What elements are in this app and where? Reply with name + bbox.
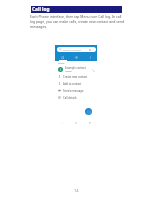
staticText: Create new contact	[63, 75, 88, 79]
button[interactable]: Home	[69, 119, 83, 126]
staticText: Search contacts	[63, 48, 82, 51]
button[interactable]: Create new contact	[55, 73, 97, 80]
staticText: Call details	[63, 96, 77, 100]
button[interactable]: Call	[91, 68, 95, 72]
button[interactable]: Recents	[83, 119, 97, 126]
button[interactable]: Dial pad	[85, 108, 92, 115]
staticText: Call log	[32, 6, 50, 13]
staticText: 14	[74, 188, 79, 193]
button[interactable]: Recents	[69, 53, 83, 61]
button[interactable]: Contacts	[83, 53, 97, 61]
staticText: Today	[58, 62, 65, 65]
staticText: Each Phone interface, then tap Menu icon…	[30, 14, 125, 29]
button[interactable]: Speed dial	[55, 53, 69, 61]
staticText: Add to contact	[63, 82, 82, 86]
button[interactable]: Add to contact	[55, 80, 97, 87]
staticText: Send a message	[63, 89, 84, 93]
button[interactable]: Call details	[55, 94, 97, 101]
staticText: Example contact	[65, 66, 86, 70]
button[interactable]: Send a message	[55, 87, 97, 94]
staticText: Mobile	[65, 70, 72, 73]
button[interactable]: Search contacts	[57, 47, 96, 52]
button[interactable]: Example contact	[55, 66, 97, 73]
